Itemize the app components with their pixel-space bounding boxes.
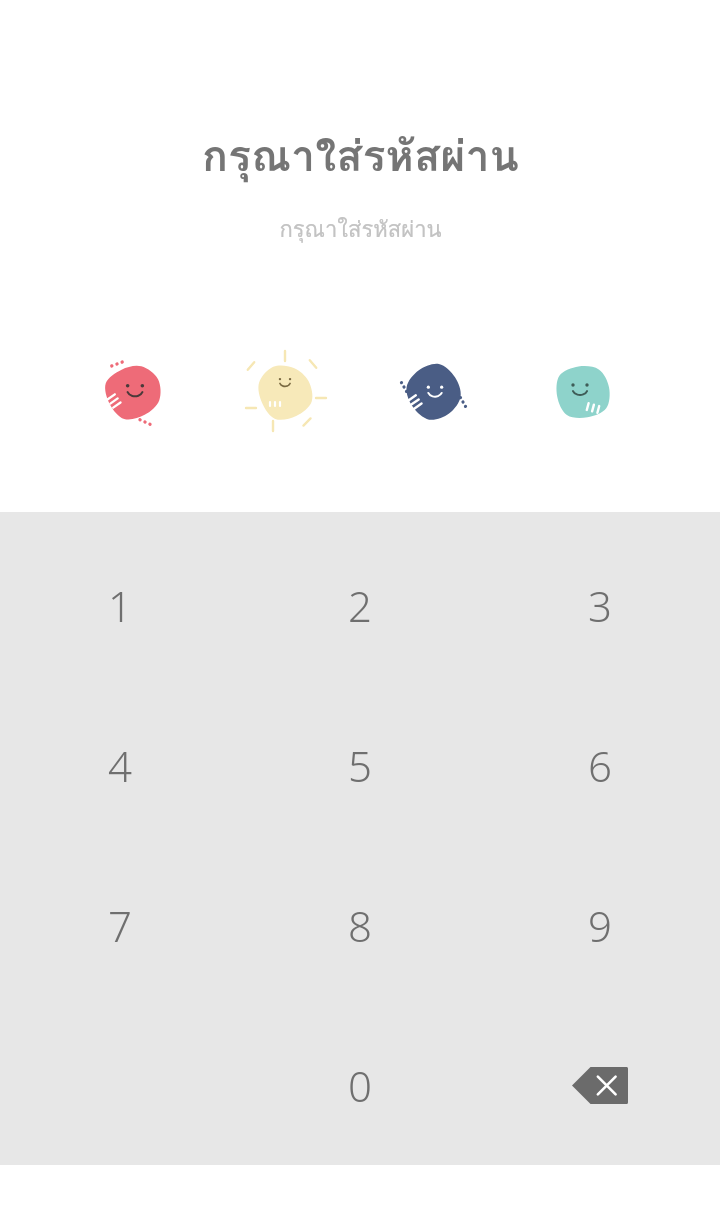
staticText: 6 — [588, 737, 612, 794]
button[interactable]: 0 — [240, 1005, 480, 1165]
staticText: 1 — [108, 577, 132, 634]
button[interactable]: 8 — [240, 845, 480, 1005]
staticText: 9 — [588, 897, 612, 954]
button[interactable]: Backspace — [480, 1005, 720, 1165]
staticText: กรุณาใส่รหัสผ่าน — [202, 122, 519, 190]
staticText: 0 — [348, 1057, 372, 1114]
button[interactable]: 3 — [480, 525, 720, 685]
staticText: 2 — [348, 577, 372, 634]
staticText: 3 — [588, 577, 612, 634]
staticText: 7 — [108, 897, 132, 954]
button[interactable]: 6 — [480, 685, 720, 845]
button[interactable]: 9 — [480, 845, 720, 1005]
staticText: กรุณาใส่รหัสผ่าน — [279, 212, 442, 247]
button[interactable]: 4 — [0, 685, 240, 845]
staticText: 5 — [348, 737, 372, 794]
button[interactable]: 7 — [0, 845, 240, 1005]
button[interactable]: 5 — [240, 685, 480, 845]
staticText: 8 — [348, 897, 372, 954]
staticText: 4 — [108, 737, 132, 794]
button[interactable]: 1 — [0, 525, 240, 685]
button[interactable]: 2 — [240, 525, 480, 685]
